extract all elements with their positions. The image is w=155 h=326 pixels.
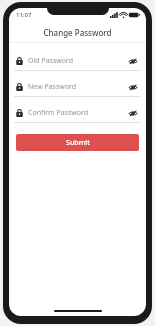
staticText: Confirm Password <box>28 108 89 118</box>
button[interactable]: Toggle password visibility <box>127 107 139 119</box>
staticText: New Password <box>28 82 77 92</box>
staticText: Old Password <box>28 56 74 66</box>
button[interactable]: Confirm Password <box>14 103 141 129</box>
staticText: Change Password <box>43 27 112 38</box>
staticText: 11:07 <box>16 11 32 19</box>
button[interactable]: Submit <box>16 134 139 151</box>
button[interactable]: Toggle password visibility <box>127 55 139 67</box>
button[interactable]: New Password <box>14 77 141 103</box>
staticText: Submit <box>66 138 90 148</box>
button[interactable]: Toggle password visibility <box>127 81 139 93</box>
button[interactable]: Old Password <box>14 51 141 77</box>
